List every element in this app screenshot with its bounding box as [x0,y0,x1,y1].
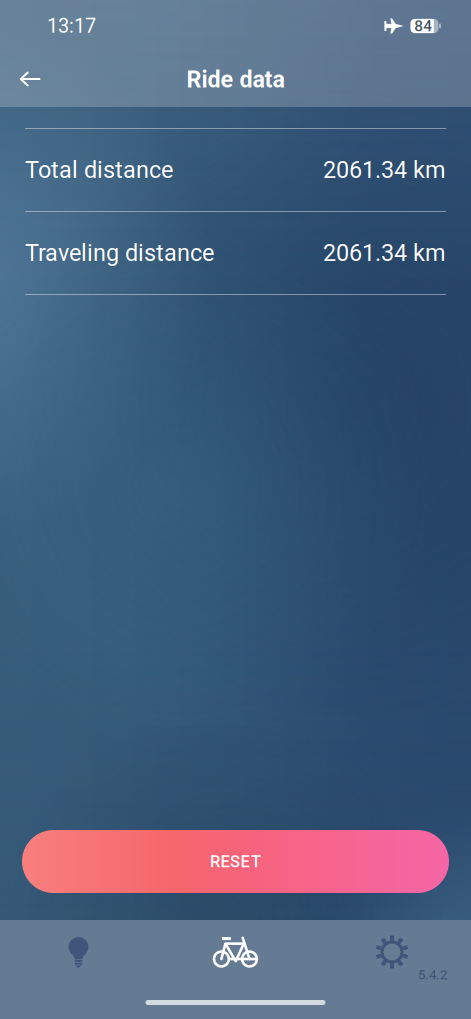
button[interactable]: Light [0,920,157,985]
button[interactable]: Settings [314,920,471,985]
button[interactable]: Back [4,53,56,105]
button[interactable]: Ride [157,920,314,985]
staticText: 2061.34 km [323,156,446,184]
staticText: 5.4.2 [418,967,447,983]
staticText: RESET [210,852,261,871]
staticText: 2061.34 km [323,239,446,267]
staticText: Total distance [25,156,173,184]
staticText: Ride data [186,66,284,93]
button[interactable]: RESET [22,830,449,893]
staticText: 13:17 [47,14,96,38]
staticText: 84 [414,17,432,35]
staticText: Traveling distance [25,239,214,267]
